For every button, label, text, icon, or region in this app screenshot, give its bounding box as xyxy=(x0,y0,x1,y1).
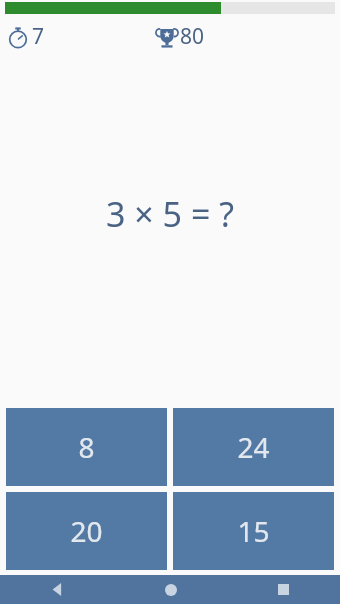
button[interactable]: Back xyxy=(0,575,114,604)
staticText: 24 xyxy=(237,428,270,466)
staticText: 8 xyxy=(78,428,95,466)
button[interactable]: 24 xyxy=(173,408,334,486)
button[interactable]: Recent apps xyxy=(227,575,340,604)
button[interactable]: 8 xyxy=(6,408,167,486)
staticText: 15 xyxy=(237,512,270,550)
staticText: 7 xyxy=(32,22,45,51)
button[interactable]: Home xyxy=(114,575,227,604)
staticText: 20 xyxy=(70,512,103,550)
staticText: 80 xyxy=(180,22,205,51)
button[interactable]: 15 xyxy=(173,492,334,570)
staticText: 3 × 5 = ? xyxy=(106,191,234,237)
button[interactable]: 20 xyxy=(6,492,167,570)
